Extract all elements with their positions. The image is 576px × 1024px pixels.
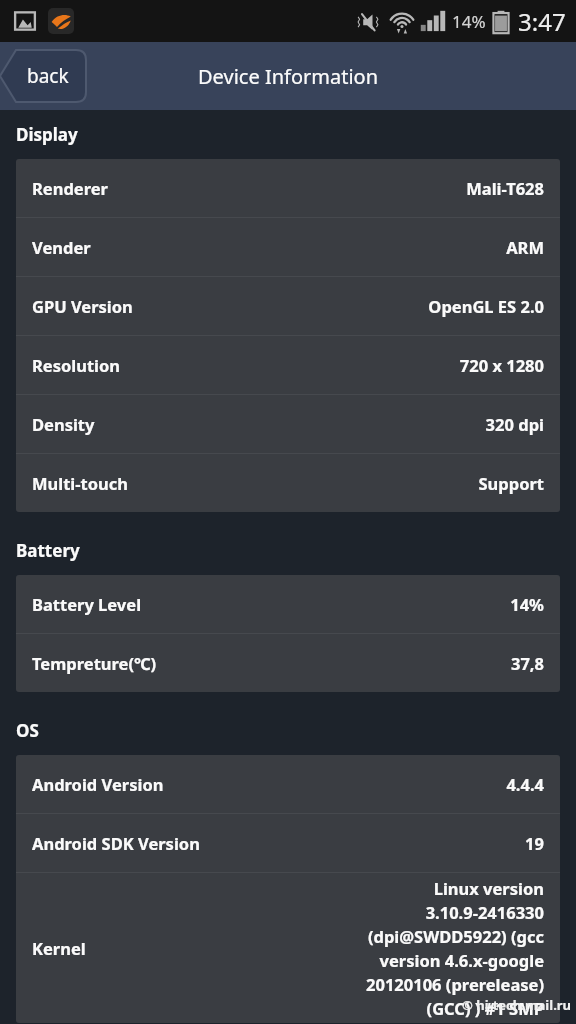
staticText: Android Version: [32, 773, 164, 795]
button[interactable]: Back: [0, 49, 86, 103]
staticText: Linux version 3.10.9-2416330 (dpi@SWDD59…: [294, 877, 544, 1020]
staticText: 19: [525, 832, 544, 854]
staticText: OS: [16, 719, 39, 742]
staticText: Mali-T628: [466, 177, 544, 199]
staticText: 4.4.4: [506, 773, 544, 795]
button[interactable]: Vender: [16, 218, 560, 277]
staticText: 14%: [510, 593, 544, 615]
button[interactable]: Tempreture(℃): [16, 634, 560, 692]
staticText: © hi-tech.mail.ru: [462, 996, 572, 1014]
staticText: ARM: [506, 236, 544, 258]
staticText: 3:47: [518, 5, 566, 38]
staticText: 320 dpi: [485, 413, 544, 435]
button[interactable]: Android Version: [16, 755, 560, 814]
staticText: back: [27, 63, 69, 89]
staticText: 37,8: [510, 652, 544, 674]
button[interactable]: Android SDK Version: [16, 814, 560, 873]
staticText: Battery: [16, 539, 80, 562]
staticText: Device Information: [198, 63, 379, 90]
staticText: Kernel: [32, 937, 86, 959]
staticText: Battery Level: [32, 593, 142, 615]
staticText: Support: [478, 472, 544, 494]
button[interactable]: Resolution: [16, 336, 560, 395]
staticText: Vender: [32, 236, 91, 258]
button[interactable]: Kernel: [32, 873, 544, 1023]
button[interactable]: Multi-touch: [16, 454, 560, 512]
staticText: GPU Version: [32, 295, 133, 317]
staticText: Density: [32, 413, 95, 435]
staticText: Tempreture(℃): [32, 652, 157, 674]
staticText: Multi-touch: [32, 472, 129, 494]
button[interactable]: Renderer: [16, 159, 560, 218]
staticText: 720 x 1280: [459, 354, 544, 376]
staticText: OpenGL ES 2.0: [428, 295, 544, 317]
staticText: Renderer: [32, 177, 108, 199]
button[interactable]: GPU Version: [16, 277, 560, 336]
button[interactable]: Battery Level: [16, 575, 560, 634]
staticText: Resolution: [32, 354, 121, 376]
staticText: Display: [16, 123, 78, 146]
staticText: 14%: [452, 10, 486, 33]
staticText: Android SDK Version: [32, 832, 200, 854]
button[interactable]: Density: [16, 395, 560, 454]
